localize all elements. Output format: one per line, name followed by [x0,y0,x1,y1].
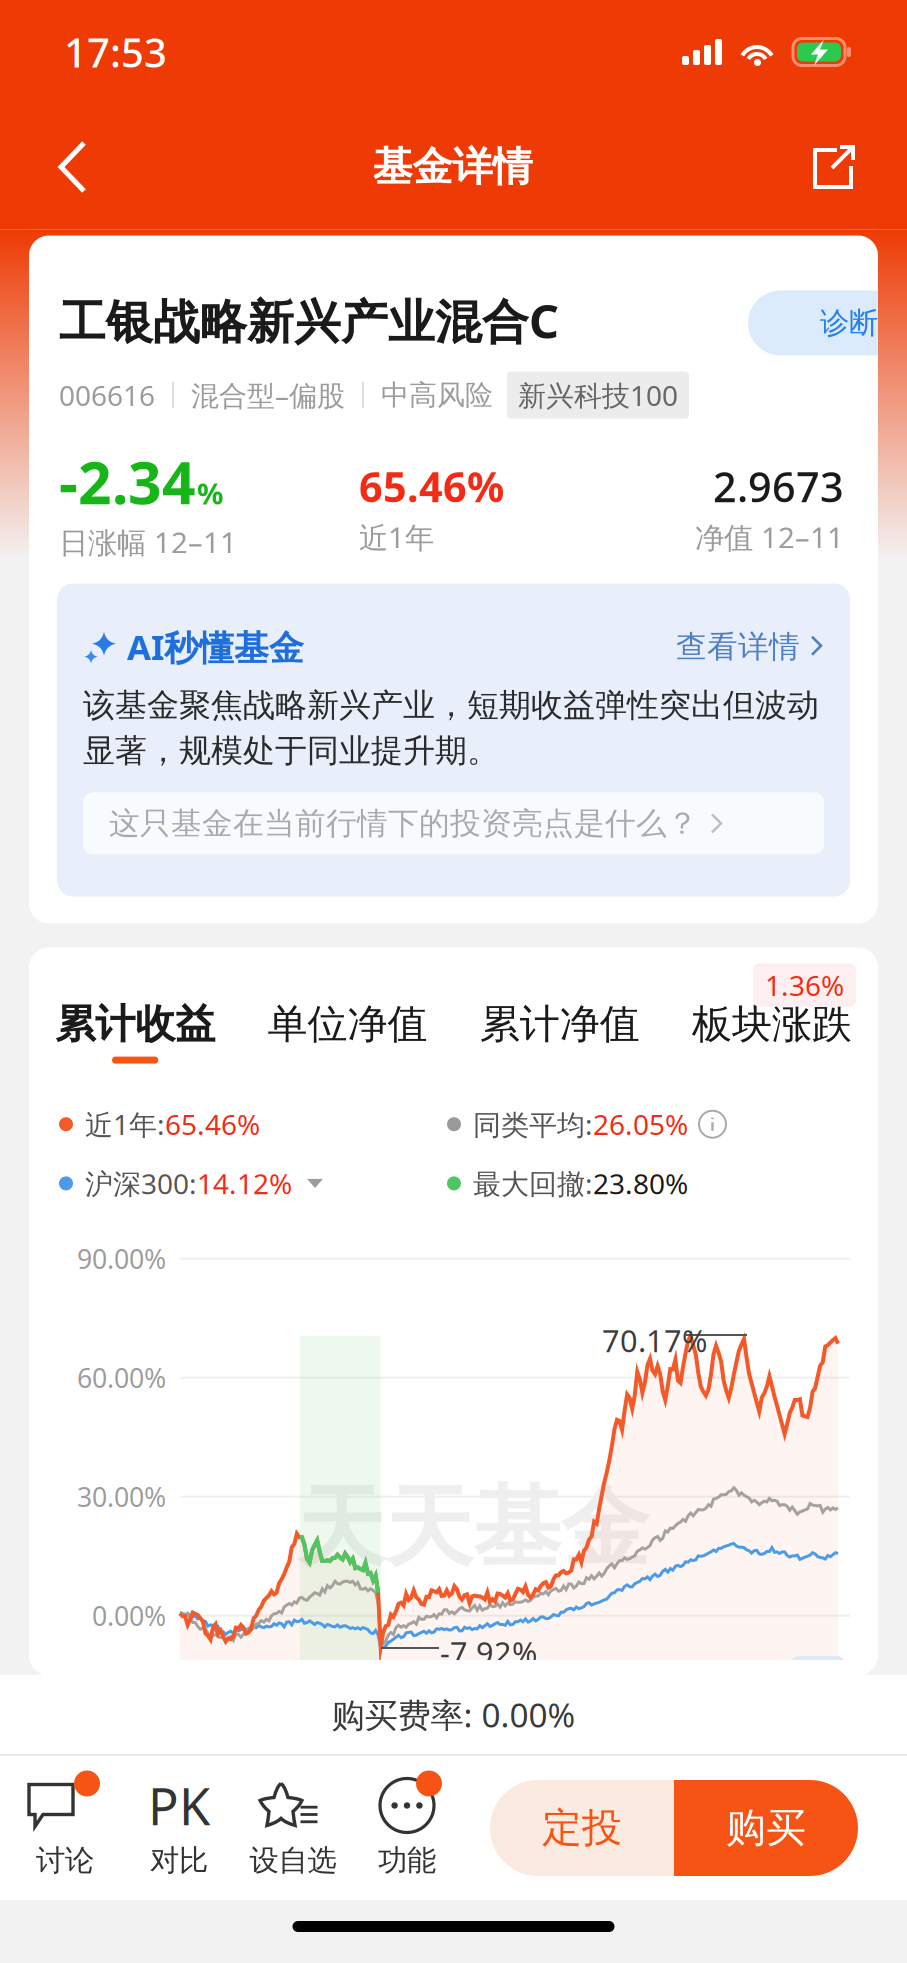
staticText: 基金详情 [372,142,532,191]
staticText: 购买 [726,1803,806,1852]
staticText: 这只基金在当前行情下的投资亮点是什么？ [109,805,698,842]
button[interactable]: 累计收益 [29,999,241,1064]
button[interactable]: 板块涨跌 [666,999,878,1064]
button[interactable]: PK [122,1777,236,1878]
button[interactable]: Expand chart [791,1656,845,1698]
button[interactable]: Share [789,118,877,216]
staticText: 讨论 [36,1842,94,1878]
button[interactable]: 这只基金在当前行情下的投资亮点是什么？ [83,792,824,854]
staticText: 1.36% [765,966,844,1004]
staticText: 0.00% [92,1598,166,1633]
staticText: 14.12% [197,1165,292,1202]
staticText: 60.00% [77,1360,166,1395]
staticText: 净值 12–11 [695,517,844,556]
staticText: 65.46% [359,459,504,514]
staticText: 单位净值 [267,999,427,1049]
staticText: -2.34 [59,443,196,520]
staticText: 日涨幅 12–11 [59,523,237,562]
staticText: 显著，规模处于同业提升期。 [83,731,499,770]
button[interactable]: 诊断 [748,290,878,355]
button[interactable]: 功能 [350,1777,464,1878]
button[interactable]: 查看详情 [676,628,824,666]
staticText: 同类平均: [473,1106,593,1143]
staticText: 30.00% [77,1479,166,1514]
staticText: 功能 [378,1842,436,1878]
button[interactable]: 购买 [674,1780,858,1876]
button[interactable]: Back [30,117,116,217]
staticText: AI秒懂基金 [127,624,304,670]
staticText: % [197,474,223,513]
staticText: 最大回撤: [473,1165,593,1202]
staticText: 沪深300: [85,1165,197,1202]
staticText: 购买费率: 0.00% [331,1692,575,1737]
button[interactable]: 讨论 [8,1777,122,1878]
staticText: 查看详情 [676,628,800,666]
staticText: 中高风险 [381,378,493,412]
staticText: 90.00% [77,1241,166,1276]
staticText: 混合型–偏股 [191,376,345,414]
staticText: 累计净值 [480,999,640,1049]
staticText: -7.92% [440,1632,537,1673]
staticText: PK [148,1772,210,1839]
staticText: 70.17% [602,1320,707,1361]
staticText: 65.46% [165,1106,260,1143]
staticText: 定投 [542,1803,622,1852]
staticText: 17:53 [64,25,167,78]
button[interactable]: 定投 [490,1780,674,1876]
staticText: 近1年: [85,1106,165,1143]
staticText: 设自选 [249,1842,336,1878]
staticText: 累计收益 [55,999,215,1049]
staticText: 天天基金 [297,1474,649,1582]
staticText: 该基金聚焦战略新兴产业，短期收益弹性突出但波动 [83,686,819,725]
staticText: 26.05% [593,1106,688,1143]
staticText: 新兴科技100 [518,376,678,414]
staticText: 板块涨跌 [692,999,852,1049]
staticText: 对比 [150,1842,208,1878]
staticText: 006616 [59,376,155,414]
button[interactable]: 设自选 [236,1777,350,1878]
staticText: 近1年 [359,517,434,556]
button[interactable]: 单位净值 [241,999,453,1064]
staticText: 诊断 [820,305,878,341]
staticText: 23.80% [593,1165,688,1202]
staticText: 2.9673 [713,459,844,514]
staticText: 工银战略新兴产业混合C [59,289,559,351]
button[interactable]: 累计净值 [453,999,666,1064]
